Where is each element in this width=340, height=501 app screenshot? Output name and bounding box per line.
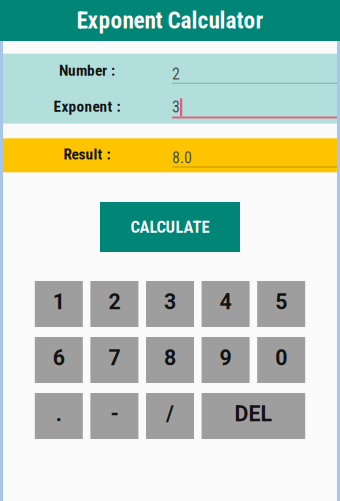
staticText: .	[56, 401, 62, 426]
button[interactable]: three	[146, 281, 194, 327]
staticText: 2	[108, 289, 120, 314]
button[interactable]: two	[90, 281, 138, 327]
staticText: Exponent Calculator	[76, 7, 263, 34]
button[interactable]: dot	[35, 393, 83, 439]
button[interactable]: four	[202, 281, 250, 327]
staticText: 5	[275, 289, 287, 314]
staticText: 0	[275, 345, 287, 370]
staticText: 3	[164, 289, 176, 314]
staticText: -	[110, 401, 118, 426]
staticText: 9	[220, 345, 232, 370]
button[interactable]: divide	[146, 393, 194, 439]
staticText: 6	[53, 345, 65, 370]
staticText: /	[166, 401, 174, 426]
staticText: CALCULATE	[130, 217, 209, 237]
staticText: 2	[172, 65, 180, 83]
button[interactable]: one	[35, 281, 83, 327]
button[interactable]: five	[257, 281, 305, 327]
staticText: 8.0	[172, 148, 192, 167]
button[interactable]: delete	[202, 393, 305, 439]
button[interactable]: six	[35, 337, 83, 383]
button[interactable]: seven	[90, 337, 138, 383]
staticText: Number :	[59, 62, 115, 80]
staticText: 4	[220, 289, 232, 314]
button[interactable]: nine	[202, 337, 250, 383]
button[interactable]: minus	[90, 393, 138, 439]
staticText: DEL	[234, 401, 272, 426]
button[interactable]: CALCULATE	[100, 202, 240, 252]
staticText: 3	[172, 98, 180, 116]
staticText: 1	[53, 289, 65, 314]
button[interactable]: zero	[257, 337, 305, 383]
button[interactable]: eight	[146, 337, 194, 383]
staticText: 8	[164, 345, 176, 370]
staticText: Result :	[63, 145, 110, 163]
staticText: Exponent :	[53, 98, 120, 116]
staticText: 7	[108, 345, 120, 370]
